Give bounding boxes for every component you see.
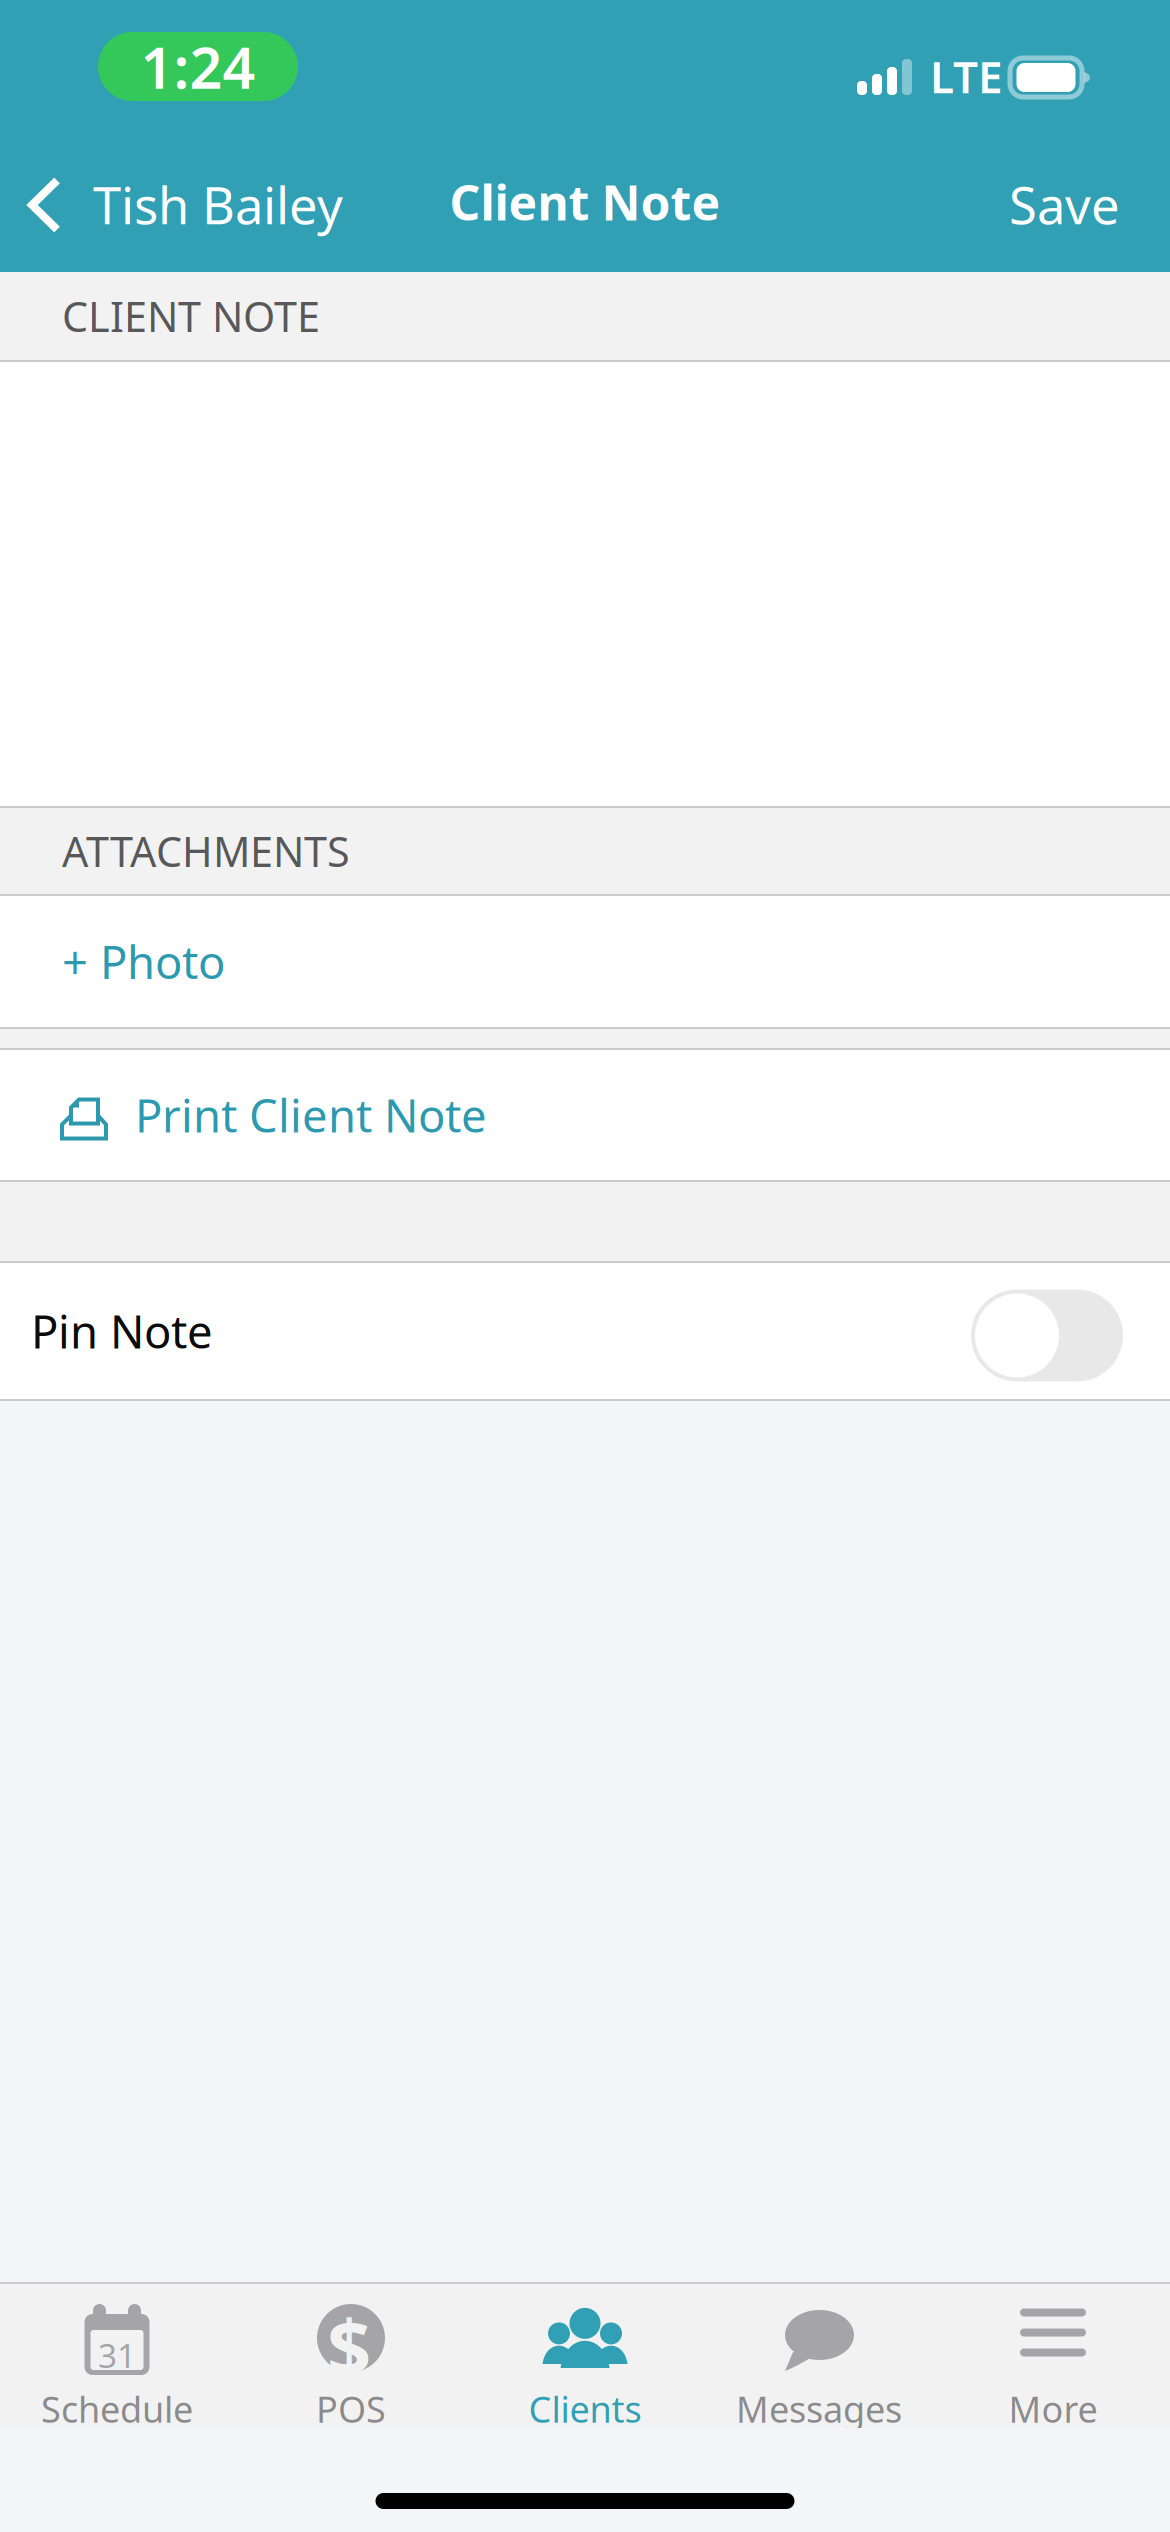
staticText: 1:24	[140, 28, 255, 104]
button[interactable]: Save	[969, 152, 1170, 252]
button[interactable]: Messages	[702, 2284, 936, 2428]
staticText: Save	[1009, 171, 1120, 238]
staticText: Tish Bailey	[93, 171, 343, 238]
button[interactable]: More	[936, 2284, 1170, 2428]
button[interactable]: + Photo	[0, 896, 1170, 1027]
staticText: More	[1008, 2385, 1097, 2433]
button[interactable]: 31	[0, 2284, 234, 2428]
staticText: Messages	[736, 2385, 902, 2433]
staticText: $	[327, 2295, 371, 2398]
button[interactable]: Clients	[468, 2284, 702, 2428]
staticText: Pin Note	[31, 1301, 213, 1361]
staticText: ATTACHMENTS	[62, 824, 350, 878]
staticText: LTE	[930, 47, 1003, 105]
button[interactable]: Tish Bailey	[0, 152, 470, 252]
staticText: Schedule	[41, 2385, 193, 2433]
button[interactable]: Print Client Note	[0, 1050, 1170, 1180]
staticText: POS	[316, 2385, 386, 2433]
staticText: CLIENT NOTE	[62, 289, 320, 343]
button[interactable]: $	[234, 2284, 468, 2428]
staticText: Clients	[528, 2385, 641, 2433]
staticText: Client Note	[449, 170, 720, 234]
staticText: + Photo	[62, 931, 225, 992]
staticText: 31	[98, 2333, 136, 2377]
staticText: Print Client Note	[135, 1085, 487, 1145]
